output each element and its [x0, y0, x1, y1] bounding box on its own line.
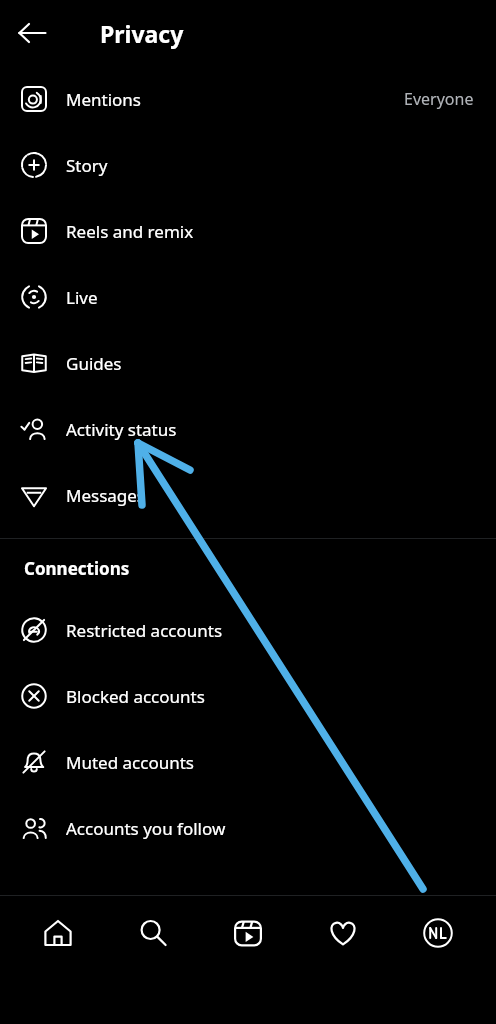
- staticText: Everyone: [404, 88, 474, 110]
- staticText: Messages: [66, 484, 146, 507]
- staticText: Restricted accounts: [66, 619, 223, 642]
- button[interactable]: Blocked accounts: [0, 663, 496, 729]
- button[interactable]: Live: [0, 264, 496, 330]
- button[interactable]: Mentions: [0, 66, 496, 132]
- button[interactable]: Reels: [211, 896, 285, 970]
- staticText: Activity status: [66, 418, 177, 441]
- button[interactable]: Reels and remix: [0, 198, 496, 264]
- staticText: Privacy: [100, 18, 184, 49]
- staticText: Accounts you follow: [66, 817, 226, 840]
- button[interactable]: Back: [8, 9, 56, 57]
- button[interactable]: Restricted accounts: [0, 597, 496, 663]
- staticText: Reels and remix: [66, 220, 194, 243]
- staticText: Mentions: [66, 88, 141, 111]
- staticText: Blocked accounts: [66, 685, 205, 708]
- staticText: Connections: [24, 557, 130, 580]
- button[interactable]: Activity: [306, 896, 380, 970]
- staticText: Live: [66, 286, 98, 309]
- staticText: Guides: [66, 352, 122, 375]
- staticText: Story: [66, 154, 108, 177]
- button[interactable]: Muted accounts: [0, 729, 496, 795]
- button[interactable]: Messages: [0, 462, 496, 528]
- button[interactable]: Profile: [401, 896, 475, 970]
- staticText: Muted accounts: [66, 751, 194, 774]
- button[interactable]: Search: [116, 896, 190, 970]
- button[interactable]: Guides: [0, 330, 496, 396]
- button[interactable]: Activity status: [0, 396, 496, 462]
- button[interactable]: Story: [0, 132, 496, 198]
- button[interactable]: Accounts you follow: [0, 795, 496, 861]
- button[interactable]: Home: [21, 896, 95, 970]
